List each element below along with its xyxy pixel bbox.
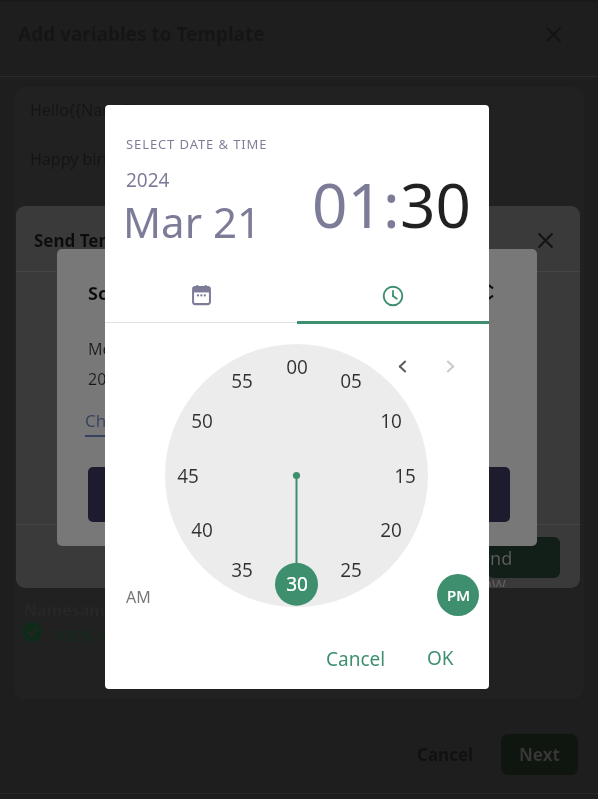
button[interactable]: 20 [370, 509, 412, 551]
button[interactable]: AM [114, 580, 162, 614]
staticText: 50 [191, 408, 213, 434]
staticText: 20 [380, 517, 402, 543]
button[interactable]: 15 [384, 455, 426, 497]
button[interactable]: Select date [105, 268, 297, 323]
staticText: Cancel [326, 646, 386, 672]
staticText: 40 [191, 517, 213, 543]
button[interactable]: 25 [330, 549, 372, 591]
other: Select time [381, 284, 405, 308]
button[interactable]: 40 [181, 509, 223, 551]
staticText: 30 [400, 162, 471, 246]
staticText: PM [447, 585, 470, 605]
button[interactable]: Change [85, 409, 147, 433]
button[interactable]: Previous [384, 348, 420, 384]
staticText: 10 [380, 408, 402, 434]
button[interactable]: Cancel [314, 640, 398, 678]
staticText: SELECT DATE & TIME [126, 135, 268, 153]
button[interactable]: 00 [276, 346, 318, 388]
staticText: Cancel [417, 743, 474, 766]
staticText: Schedule [88, 281, 169, 306]
staticText: Send Template [34, 229, 159, 252]
staticText: 01: [312, 162, 400, 246]
button[interactable]: Select time [297, 268, 489, 323]
staticText: Next [519, 743, 560, 766]
button[interactable]: 35 [221, 549, 263, 591]
staticText: Message will be sent on Mar 21, [88, 338, 329, 360]
staticText: Hello{{Name}} [30, 99, 139, 121]
staticText: 05 [340, 368, 362, 394]
staticText: 25 [340, 557, 362, 583]
button[interactable]: 10 [370, 400, 412, 442]
staticText: 45 [177, 463, 199, 489]
staticText: OK [427, 645, 454, 671]
staticText: 2024 at 01:30 AM [88, 368, 218, 390]
staticText: Namesample text [24, 599, 166, 621]
staticText: 15 [394, 463, 416, 489]
button[interactable]: 30 [276, 563, 318, 605]
button[interactable]: 45 [167, 455, 209, 497]
button[interactable]: Cancel [402, 734, 488, 775]
button[interactable]: PM [437, 574, 479, 616]
staticText: 35 [231, 557, 253, 583]
staticText: 100% match [52, 625, 149, 647]
button[interactable]: 55 [221, 360, 263, 402]
staticText: 55 [231, 368, 253, 394]
button[interactable]: 05 [330, 360, 372, 402]
staticText: Happy birthday [30, 148, 146, 170]
staticText: Add variables to Template [18, 21, 265, 47]
staticText: 30 [286, 571, 308, 597]
staticText: 2024 [126, 167, 170, 193]
button[interactable]: Next [432, 348, 468, 384]
staticText: 00 [286, 354, 308, 380]
button[interactable]: OK [413, 639, 468, 677]
staticText: Send now [470, 546, 542, 587]
staticText: Mar 21 [123, 193, 261, 250]
staticText: Change [85, 409, 147, 432]
button[interactable]: Send now [488, 537, 560, 578]
other: Select date [190, 284, 213, 307]
button[interactable]: Close dialog [527, 222, 564, 259]
button[interactable]: 50 [181, 400, 223, 442]
staticText: AM [126, 586, 151, 608]
button[interactable]: Next [501, 734, 578, 775]
